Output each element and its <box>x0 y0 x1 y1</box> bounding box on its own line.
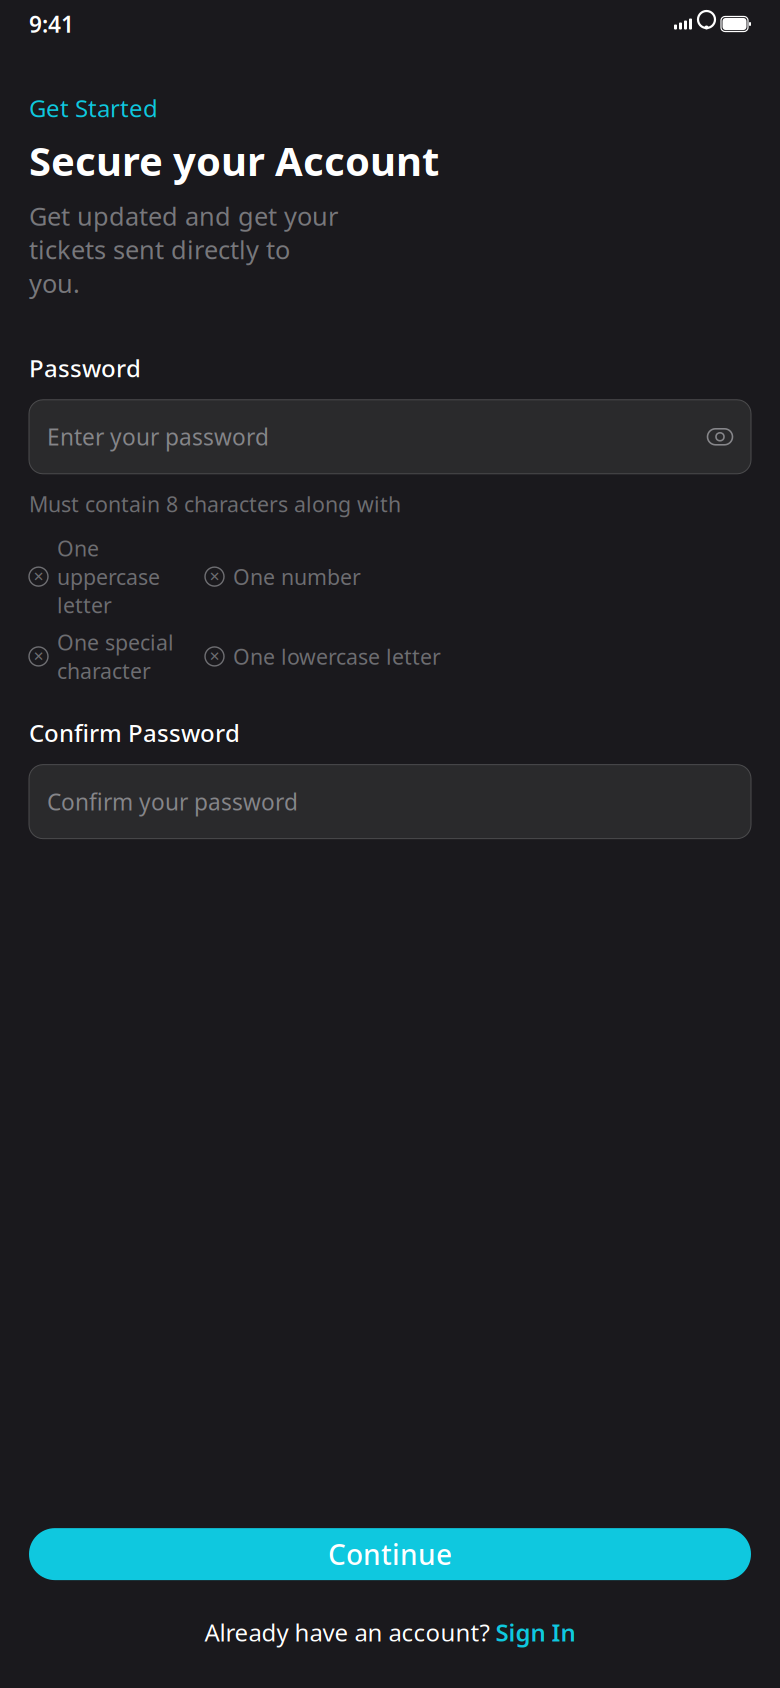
button[interactable]: Enter your password <box>29 400 751 474</box>
staticText: ✕ <box>33 649 44 664</box>
staticText: Confirm Password <box>29 717 240 749</box>
staticText: Password <box>29 352 141 384</box>
staticText: ✕ <box>209 569 220 584</box>
staticText: Sign In <box>495 1616 575 1648</box>
staticText: Continue <box>328 1535 452 1573</box>
staticText: Secure your Account <box>29 134 439 187</box>
staticText: One number <box>233 562 361 591</box>
staticText: 9:41 <box>29 9 74 39</box>
staticText: Get updated and get your tickets sent di… <box>29 199 338 300</box>
staticText: Confirm your password <box>47 787 298 817</box>
staticText: One uppercase letter <box>57 534 160 619</box>
button[interactable]: Continue <box>29 1528 751 1580</box>
staticText: Already have an account? <box>204 1616 489 1648</box>
staticText: ✕ <box>33 569 44 584</box>
button[interactable]: Confirm your password <box>29 765 751 839</box>
button[interactable]: Already have an account? <box>0 1616 780 1648</box>
staticText: One special character <box>57 628 174 685</box>
staticText: One lowercase letter <box>233 642 441 671</box>
staticText: Must contain 8 characters along with <box>29 490 401 518</box>
staticText: ✕ <box>209 649 220 664</box>
staticText: Get Started <box>29 92 158 124</box>
staticText: Enter your password <box>47 422 269 452</box>
